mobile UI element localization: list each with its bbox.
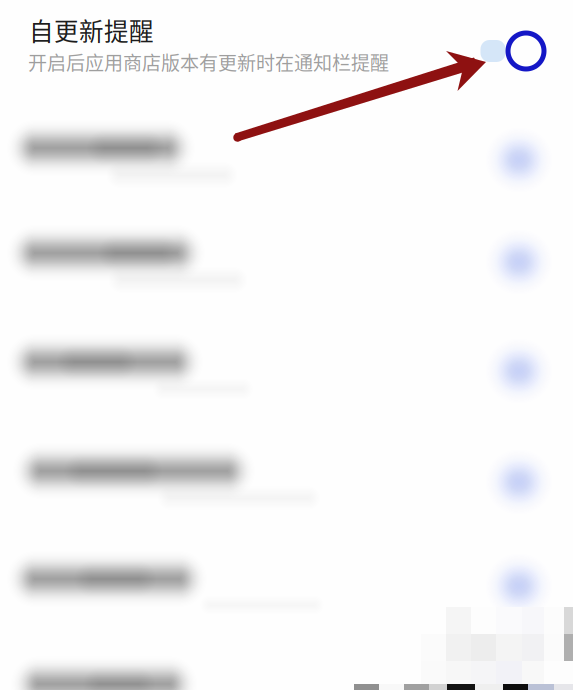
button[interactable]: 设置项 (0, 0, 573, 690)
button[interactable]: 自更新提醒 (0, 0, 573, 100)
staticText: 开启后应用商店版本有更新时在通知栏提醒 (28, 48, 389, 76)
button[interactable]: 设置项 (0, 0, 573, 690)
staticText: 自更新提醒 (29, 12, 154, 48)
button[interactable]: 设置项 (0, 0, 573, 690)
button[interactable]: 设置项 (0, 0, 573, 690)
button[interactable]: 自更新提醒开关 (480, 40, 505, 62)
button[interactable]: 设置项 (0, 0, 573, 690)
